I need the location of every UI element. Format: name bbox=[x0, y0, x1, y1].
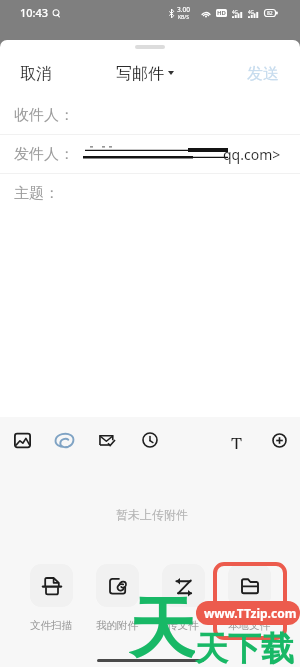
button[interactable]: 发件人： bbox=[0, 135, 300, 173]
staticText: 传文件 bbox=[167, 619, 199, 632]
staticText: 82 bbox=[267, 10, 273, 17]
staticText: www.TTzip.com bbox=[204, 605, 297, 621]
button[interactable]: 收件人： bbox=[0, 96, 300, 134]
button[interactable]: 传文件 bbox=[157, 562, 209, 632]
staticText: 本地文件 bbox=[228, 619, 270, 632]
staticText: 写邮件 bbox=[116, 64, 164, 82]
button[interactable]: 主题： bbox=[0, 174, 300, 212]
button[interactable]: 写邮件 bbox=[112, 58, 178, 88]
button[interactable]: 取消 bbox=[0, 58, 62, 88]
staticText: 天 bbox=[129, 587, 195, 667]
staticText: 主题： bbox=[14, 184, 59, 203]
button[interactable]: More options bbox=[263, 424, 295, 456]
staticText: 发件人： bbox=[14, 145, 74, 164]
staticText: 暂未上传附件 bbox=[116, 507, 188, 522]
staticText: T bbox=[231, 432, 243, 449]
button[interactable]: 发送 bbox=[237, 58, 300, 88]
button[interactable]: 本地文件 bbox=[223, 562, 275, 632]
staticText: 发送 bbox=[247, 64, 279, 82]
staticText: 天下载 bbox=[195, 628, 294, 667]
staticText: 收件人： bbox=[14, 106, 74, 125]
button[interactable]: Insert image bbox=[6, 424, 38, 456]
staticText: 3.00 bbox=[177, 5, 190, 14]
button[interactable]: Signature bbox=[48, 424, 80, 456]
button[interactable]: Text format bbox=[220, 424, 252, 456]
staticText: 文件扫描 bbox=[30, 619, 72, 632]
staticText: 4G bbox=[232, 9, 238, 15]
staticText: 10:43 bbox=[20, 5, 49, 20]
button[interactable]: Schedule send bbox=[134, 424, 166, 456]
button[interactable]: 文件扫描 bbox=[25, 562, 77, 632]
button[interactable]: Read receipt bbox=[91, 424, 123, 456]
staticText: 取消 bbox=[20, 64, 52, 82]
button[interactable]: 我的附件 bbox=[91, 562, 143, 632]
staticText: KB/S bbox=[178, 14, 189, 21]
staticText: qq.com> bbox=[223, 145, 281, 164]
staticText: 4G bbox=[248, 9, 254, 15]
staticText: HD bbox=[217, 9, 226, 17]
staticText: 我的附件 bbox=[96, 619, 138, 632]
